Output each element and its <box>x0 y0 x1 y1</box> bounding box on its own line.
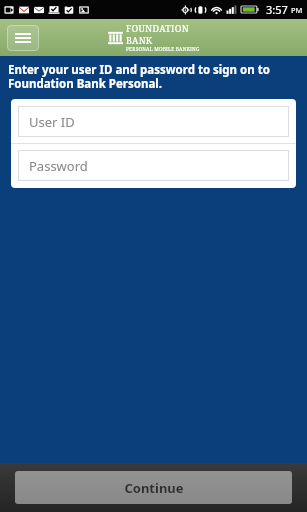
staticText: Password <box>29 157 88 175</box>
staticText: Continue <box>124 479 184 497</box>
staticText: BANK <box>126 34 153 46</box>
button[interactable]: User ID <box>18 106 289 137</box>
staticText: 3:57 <box>266 2 288 17</box>
button[interactable]: Continue <box>15 471 292 504</box>
staticText: User ID <box>29 113 75 131</box>
button[interactable]: Password <box>18 150 289 181</box>
staticText: Enter your user ID and password to sign … <box>8 62 297 91</box>
staticText: FOUNDATION <box>126 22 189 34</box>
staticText: PERSONAL MOBILE BANKING <box>126 46 200 53</box>
staticText: PM <box>291 5 303 15</box>
button[interactable]: Open navigation menu <box>7 25 39 51</box>
